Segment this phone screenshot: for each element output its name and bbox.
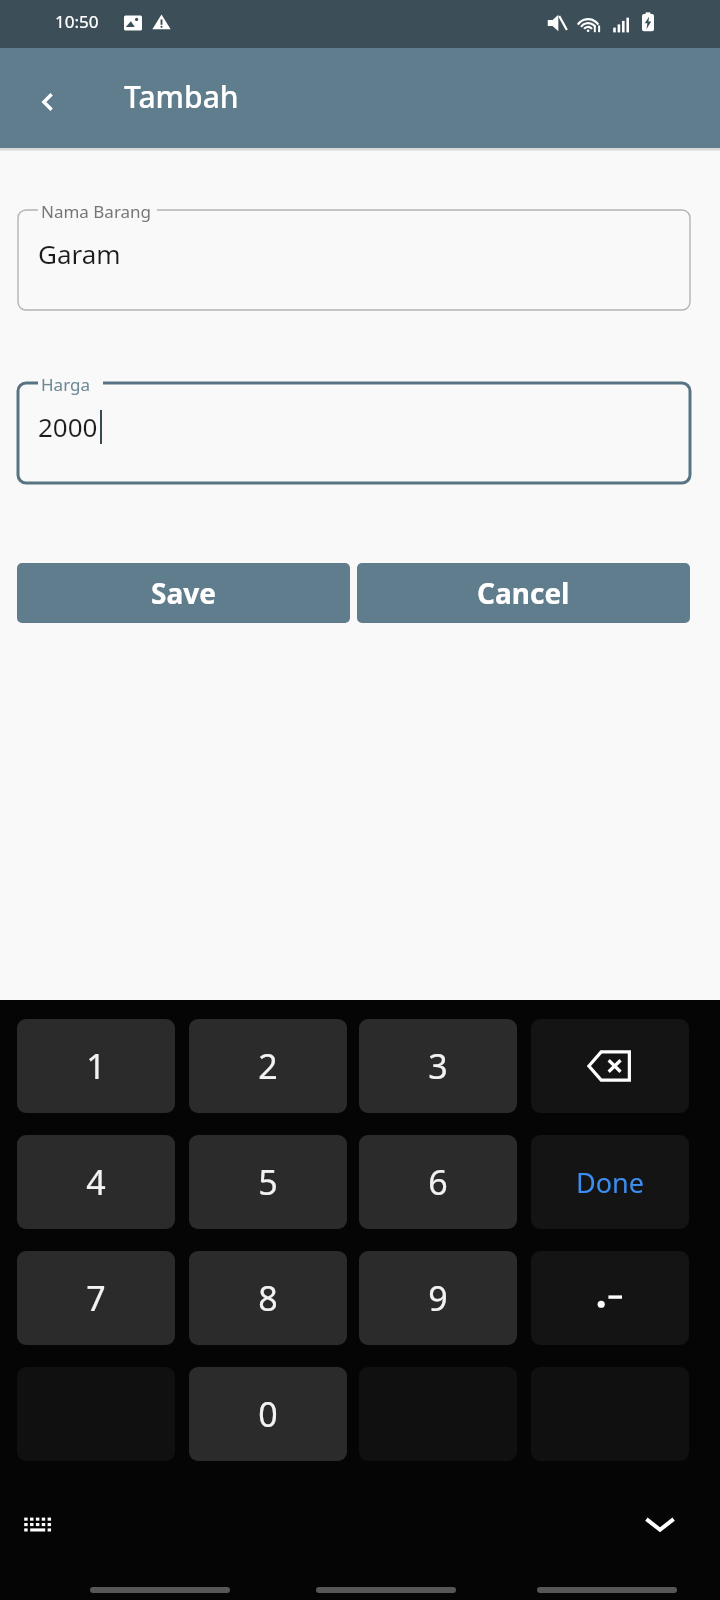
staticText: Save — [151, 574, 216, 612]
staticText: 1 — [86, 1043, 106, 1089]
button[interactable]: Hide keyboard — [630, 1494, 690, 1554]
button[interactable]: 6 — [359, 1135, 517, 1229]
button[interactable]: 9 — [359, 1251, 517, 1345]
button[interactable]: 3 — [359, 1019, 517, 1113]
button[interactable]: 2 — [189, 1019, 347, 1113]
staticText: 0 — [258, 1391, 278, 1437]
button[interactable]: Navigation — [90, 1587, 230, 1593]
button[interactable]: Change keyboard — [8, 1494, 68, 1554]
staticText: 7 — [86, 1275, 106, 1321]
button[interactable]: Cancel — [357, 563, 690, 623]
button[interactable]: 1 — [17, 1019, 175, 1113]
button[interactable]: 4 — [17, 1135, 175, 1229]
staticText: Garam — [38, 236, 121, 271]
staticText: 9 — [428, 1275, 448, 1321]
staticText: 2 — [258, 1043, 278, 1089]
button[interactable]: Done — [531, 1135, 689, 1229]
staticText: 8 — [258, 1275, 278, 1321]
staticText: 4 — [86, 1159, 106, 1205]
button[interactable]: Save — [17, 563, 350, 623]
button[interactable]: Harga — [18, 383, 690, 483]
staticText: 3 — [428, 1043, 448, 1089]
staticText: Harga — [41, 373, 90, 396]
staticText: 6 — [428, 1159, 448, 1205]
staticText: Done — [576, 1164, 644, 1201]
staticText: 10:50 — [55, 10, 99, 33]
button[interactable]: 7 — [17, 1251, 175, 1345]
button[interactable]: Backspace — [531, 1019, 689, 1113]
button[interactable]: Navigation — [537, 1587, 677, 1593]
staticText: Tambah — [124, 76, 239, 117]
button[interactable]: Navigation — [316, 1587, 456, 1593]
button[interactable]: Period and minus — [531, 1251, 689, 1345]
button[interactable]: 5 — [189, 1135, 347, 1229]
staticText: 5 — [258, 1159, 278, 1205]
button[interactable]: Nama Barang — [18, 210, 690, 310]
button[interactable]: 8 — [189, 1251, 347, 1345]
staticText: Nama Barang — [41, 200, 152, 223]
staticText: 2000 — [38, 409, 98, 444]
staticText: Cancel — [477, 574, 570, 612]
button[interactable]: 0 — [189, 1367, 347, 1461]
button[interactable]: Back — [22, 76, 74, 128]
